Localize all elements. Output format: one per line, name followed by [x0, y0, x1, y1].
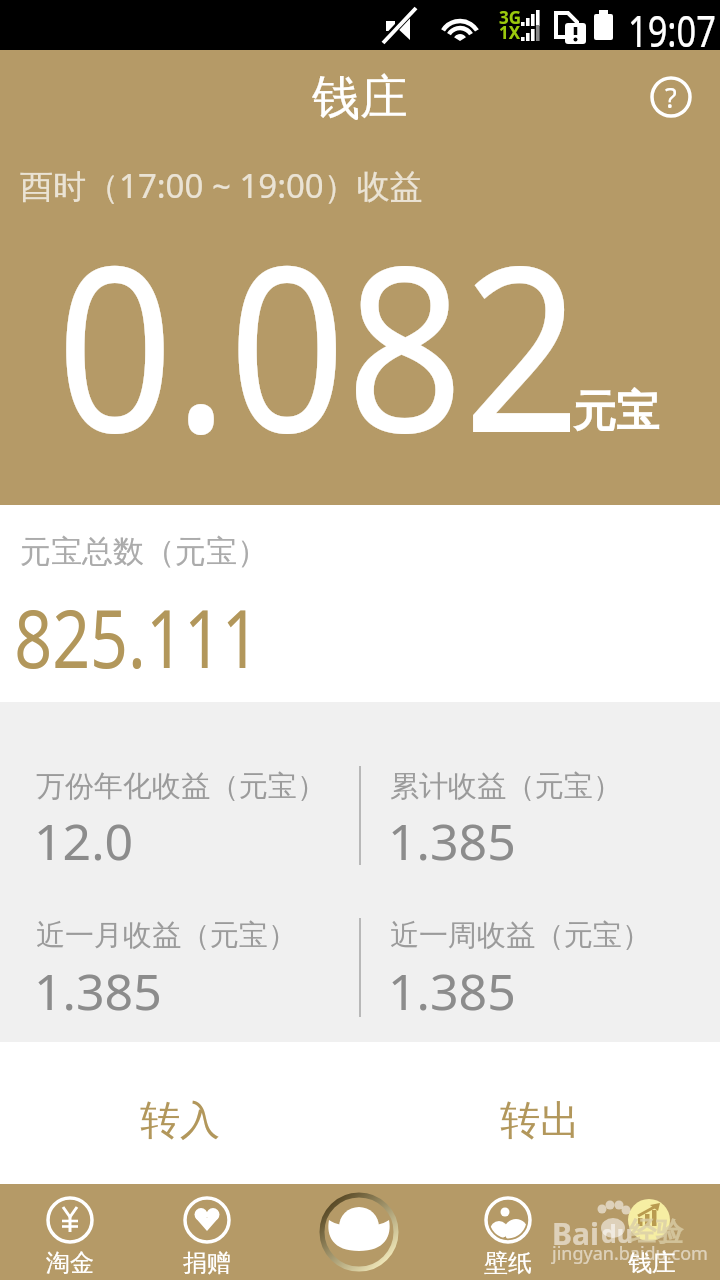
button[interactable]: 淘金 [10, 1184, 130, 1280]
staticText: 钱庄 [312, 68, 408, 128]
button[interactable]: 转入 [0, 1042, 360, 1184]
staticText: 近一周收益（元宝） [390, 917, 651, 954]
staticText: 酉时（17:00 ~ 19:00）收益 [20, 163, 423, 208]
staticText: 捐赠 [183, 1248, 231, 1278]
staticText: 淘金 [46, 1248, 94, 1278]
staticText: 元宝总数（元宝） [20, 532, 268, 571]
staticText: 元宝 [573, 385, 659, 439]
staticText: 转出 [500, 1095, 580, 1145]
button[interactable]: 转出 [360, 1042, 720, 1184]
staticText: jingyan.baidu.com [552, 1241, 708, 1266]
staticText: 1.385 [388, 957, 516, 1025]
staticText: 825.111 [14, 582, 260, 691]
button[interactable]: 钱庄 [592, 1184, 712, 1280]
staticText: 0.082 [56, 188, 581, 499]
staticText: Bai [552, 1213, 599, 1254]
button[interactable]: ? [649, 75, 693, 119]
staticText: du [601, 1216, 634, 1250]
staticText: 19:07 [628, 1, 716, 51]
staticText: 经验 [629, 1215, 683, 1249]
staticText: 1.385 [34, 957, 162, 1025]
staticText: 3G [499, 6, 522, 29]
staticText: 1X [499, 21, 521, 44]
button[interactable] [322, 1195, 397, 1270]
staticText: 12.0 [34, 807, 134, 875]
staticText: 壁纸 [484, 1248, 532, 1278]
button[interactable]: 捐赠 [147, 1184, 267, 1280]
staticText: 1.385 [388, 807, 516, 875]
staticText: 转入 [140, 1095, 220, 1145]
staticText: 钱庄 [628, 1248, 676, 1278]
staticText: 近一月收益（元宝） [36, 917, 297, 954]
staticText: ? [665, 79, 677, 116]
button[interactable]: 壁纸 [448, 1184, 568, 1280]
staticText: 累计收益（元宝） [390, 768, 622, 805]
staticText: 万份年化收益（元宝） [36, 768, 326, 805]
